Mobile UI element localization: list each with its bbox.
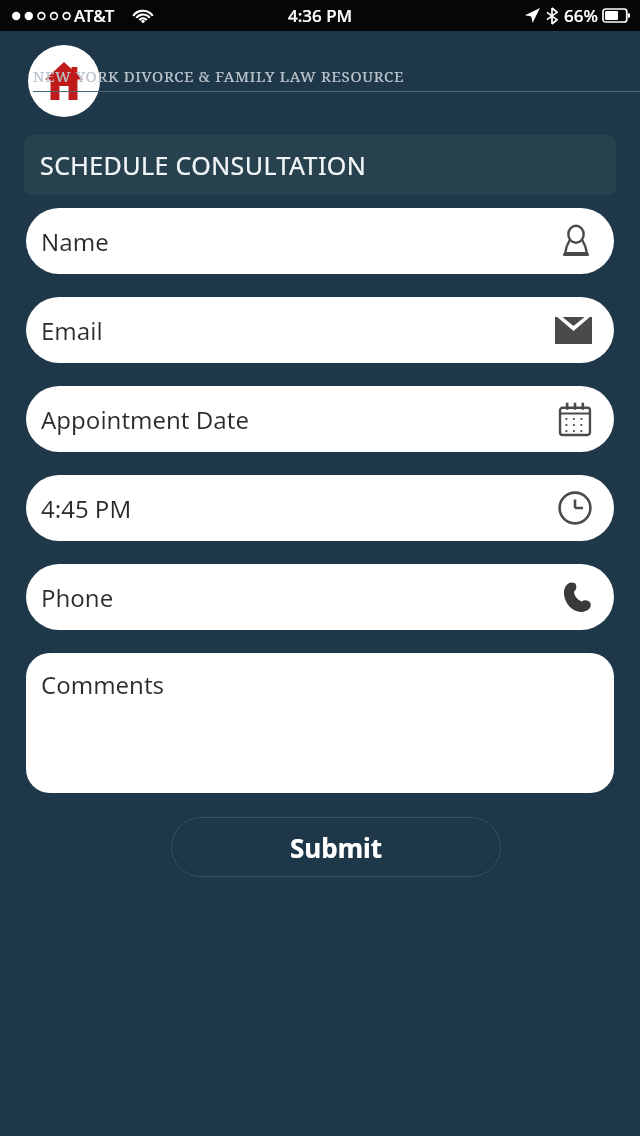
other: Appointment Date: [558, 402, 592, 436]
staticText: Email: [41, 314, 103, 347]
button[interactable]: Phone: [26, 564, 614, 630]
other: Name: [560, 224, 592, 258]
button[interactable]: Comments: [26, 653, 614, 793]
button[interactable]: Appointment Date: [26, 386, 614, 452]
staticText: Comments: [41, 668, 165, 701]
button[interactable]: Submit: [171, 817, 501, 877]
button[interactable]: Name: [26, 208, 614, 274]
button[interactable]: Home: [28, 45, 100, 117]
staticText: NEW YORK DIVORCE & FAMILY LAW RESOURCE: [33, 66, 404, 86]
button[interactable]: Email: [26, 297, 614, 363]
other: Phone: [562, 581, 592, 613]
staticText: Name: [41, 225, 109, 258]
staticText: Submit: [290, 830, 383, 865]
staticText: 4:36 PM: [288, 4, 353, 27]
other: Time: [558, 491, 592, 525]
staticText: Appointment Date: [41, 403, 249, 436]
staticText: Phone: [41, 581, 114, 614]
staticText: 4:45 PM: [41, 492, 132, 525]
other: Email: [555, 317, 592, 344]
staticText: AT&T: [74, 4, 115, 27]
button[interactable]: 4:45 PM: [26, 475, 614, 541]
button[interactable]: SCHEDULE CONSULTATION: [24, 135, 616, 195]
staticText: 66%: [564, 4, 598, 27]
staticText: SCHEDULE CONSULTATION: [40, 148, 367, 182]
